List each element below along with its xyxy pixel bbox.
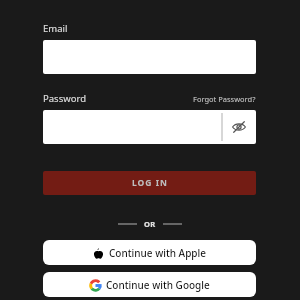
button[interactable]: Toggle password visibility: [222, 110, 256, 144]
button[interactable]: [43, 40, 256, 74]
button[interactable]: Toggle password visibility: [43, 110, 256, 144]
button[interactable]: Continue with Apple: [43, 240, 256, 265]
staticText: Continue with Apple: [109, 246, 206, 260]
staticText: Password: [43, 92, 86, 105]
staticText: Forgot Password?: [193, 94, 256, 104]
button[interactable]: LOG IN: [43, 171, 256, 195]
staticText: Email: [43, 22, 68, 35]
button[interactable]: Continue with Google: [43, 272, 256, 297]
staticText: Continue with Google: [106, 278, 210, 292]
staticText: OR: [144, 219, 156, 229]
staticText: LOG IN: [132, 177, 168, 189]
button[interactable]: Forgot Password?: [193, 94, 256, 104]
